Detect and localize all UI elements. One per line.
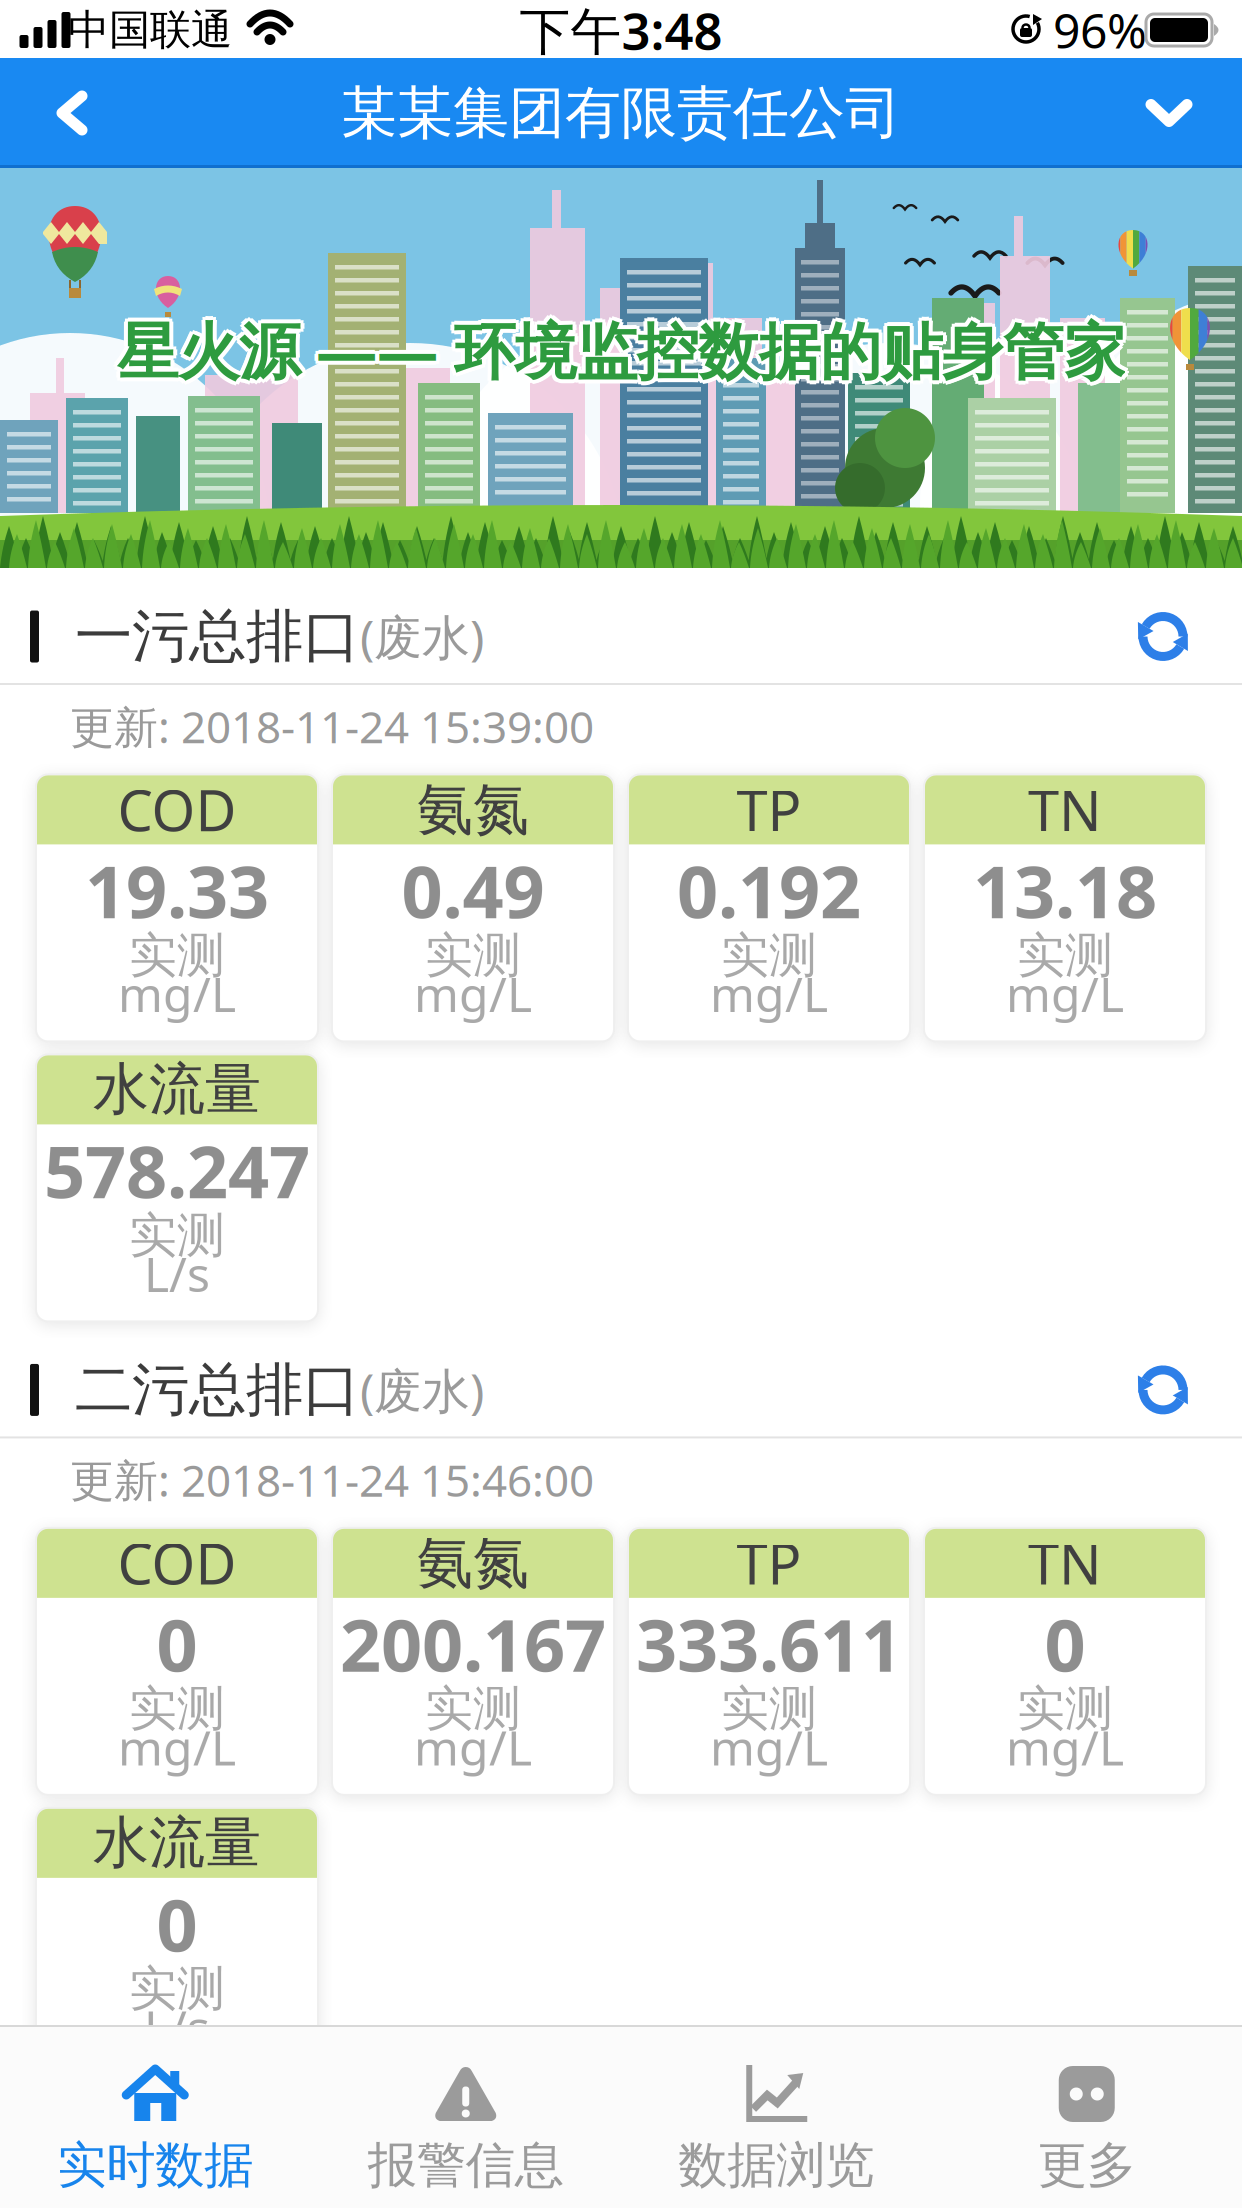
staticText: 水流量 xyxy=(93,1055,261,1124)
staticText: 一污总排口 xyxy=(75,601,360,672)
staticText: 星火源 —— 环境监控数据的贴身管家 xyxy=(121,309,1129,391)
staticText: COD xyxy=(117,1526,236,1600)
staticText: 报警信息 xyxy=(368,2135,564,2196)
staticText: 200.167 xyxy=(340,1596,606,1692)
staticText: 实测 xyxy=(129,926,225,985)
staticText: mg/L xyxy=(1006,962,1124,1025)
staticText: TN xyxy=(1028,772,1102,847)
staticText: mg/L xyxy=(118,1715,236,1779)
staticText: 氨氮 xyxy=(417,1528,529,1597)
staticText: 星火源 —— 环境监控数据的贴身管家 xyxy=(114,306,1122,388)
staticText: 某某集团有限责任公司 xyxy=(341,79,901,147)
staticText: 实测 xyxy=(425,1679,521,1738)
button[interactable]: 报警信息 xyxy=(310,2027,621,2208)
staticText: (废水) xyxy=(360,605,484,668)
staticText: mg/L xyxy=(710,962,828,1025)
staticText: 实时数据 xyxy=(57,2135,253,2196)
button[interactable]: 刷新 xyxy=(1134,1341,1242,1439)
staticText: 星火源 —— 环境监控数据的贴身管家 xyxy=(117,309,1125,391)
staticText: 数据浏览 xyxy=(678,2135,874,2196)
staticText: 96% xyxy=(1053,0,1147,62)
button[interactable]: 返回 xyxy=(0,62,88,164)
staticText: 13.18 xyxy=(973,843,1157,938)
button[interactable]: 数据浏览 xyxy=(621,2027,931,2208)
staticText: 实测 xyxy=(1017,926,1113,985)
staticText: 中国联通 xyxy=(68,5,232,55)
staticText: 0 xyxy=(156,1876,197,1972)
staticText: 星火源 —— 环境监控数据的贴身管家 xyxy=(117,305,1125,387)
staticText: mg/L xyxy=(1006,1715,1124,1779)
staticText: 0.49 xyxy=(401,843,544,938)
staticText: 星火源 —— 环境监控数据的贴身管家 xyxy=(120,312,1128,394)
staticText: 0 xyxy=(156,1596,197,1692)
staticText: 实测 xyxy=(1017,1679,1113,1738)
staticText: 实测 xyxy=(721,926,817,985)
staticText: 二污总排口 xyxy=(75,1355,360,1425)
staticText: 19.33 xyxy=(85,843,269,938)
staticText: 氨氮 xyxy=(417,775,529,844)
staticText: 实测 xyxy=(129,1959,225,2018)
staticText: mg/L xyxy=(414,1715,532,1779)
staticText: 下午3:48 xyxy=(519,0,722,64)
staticText: mg/L xyxy=(118,962,236,1025)
staticText: TP xyxy=(736,1526,801,1600)
staticText: 更多 xyxy=(1038,2135,1136,2196)
button[interactable]: 刷新 xyxy=(1134,587,1242,685)
staticText: 578.247 xyxy=(44,1123,310,1218)
staticText: TN xyxy=(1028,1526,1102,1600)
staticText: mg/L xyxy=(710,1715,828,1779)
staticText: (废水) xyxy=(360,1358,484,1422)
staticText: 实测 xyxy=(425,926,521,985)
staticText: mg/L xyxy=(414,962,532,1025)
staticText: 水流量 xyxy=(93,1808,261,1877)
button[interactable]: 展开 xyxy=(1148,61,1242,164)
staticText: 实测 xyxy=(129,1679,225,1738)
staticText: 0 xyxy=(1044,1596,1085,1692)
button[interactable]: 更多 xyxy=(931,2027,1242,2208)
staticText: 更新: 2018-11-24 15:39:00 xyxy=(70,697,594,755)
staticText: 更新: 2018-11-24 15:46:00 xyxy=(70,1450,594,1509)
button[interactable]: 实时数据 xyxy=(0,2027,310,2208)
staticText: 333.611 xyxy=(636,1596,902,1692)
staticText: TP xyxy=(736,772,801,847)
staticText: 星火源 —— 环境监控数据的贴身管家 xyxy=(114,312,1122,394)
staticText: COD xyxy=(117,772,236,847)
staticText: 星火源 —— 环境监控数据的贴身管家 xyxy=(117,313,1125,395)
staticText: 实测 xyxy=(721,1679,817,1738)
staticText: L/s xyxy=(144,1995,210,2059)
staticText: 0.192 xyxy=(677,843,861,938)
staticText: 星火源 —— 环境监控数据的贴身管家 xyxy=(120,306,1128,388)
staticText: 星火源 —— 环境监控数据的贴身管家 xyxy=(113,309,1121,391)
staticText: L/s xyxy=(144,1242,210,1305)
staticText: 实测 xyxy=(129,1206,225,1265)
